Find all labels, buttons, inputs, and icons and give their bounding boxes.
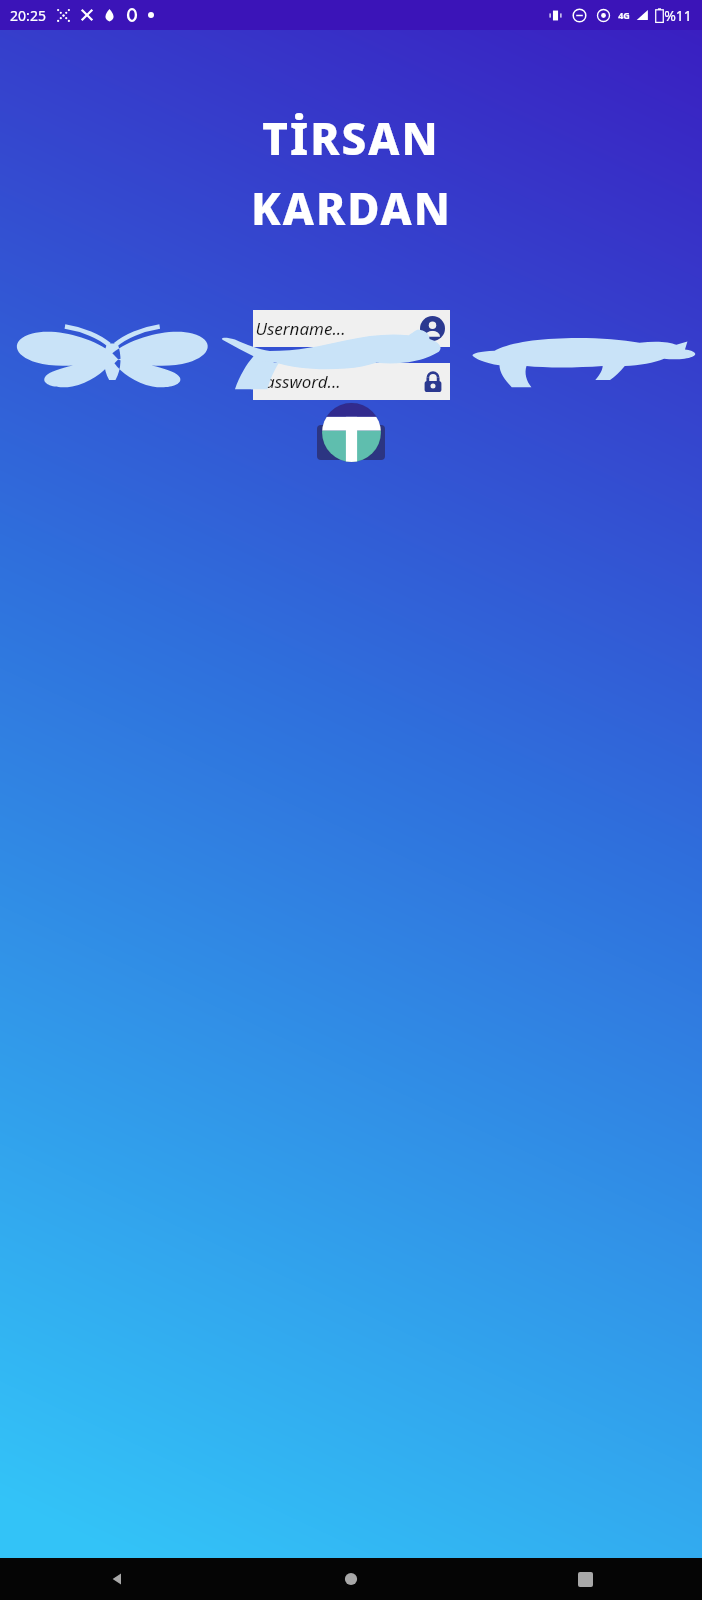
button[interactable]: Password... xyxy=(253,363,450,400)
button[interactable]: Back xyxy=(0,1558,234,1600)
staticText: %11 xyxy=(664,6,692,25)
button[interactable]: Recent apps xyxy=(468,1558,702,1600)
button[interactable]: Username... xyxy=(253,310,450,347)
staticText: 20:25 xyxy=(10,6,46,25)
staticText: 4G xyxy=(618,9,630,21)
staticText: TİRSAN xyxy=(262,108,440,168)
staticText: Username... xyxy=(255,317,346,340)
button[interactable]: Password xyxy=(421,370,445,394)
other: Tirsan logo xyxy=(322,403,381,462)
button[interactable]: Home xyxy=(234,1558,468,1600)
staticText: KARDAN xyxy=(251,178,452,238)
button[interactable]: Username xyxy=(420,316,445,341)
staticText: Password... xyxy=(255,370,341,393)
button[interactable]: LOGIN xyxy=(317,425,385,460)
staticText: LOGIN xyxy=(326,434,377,452)
